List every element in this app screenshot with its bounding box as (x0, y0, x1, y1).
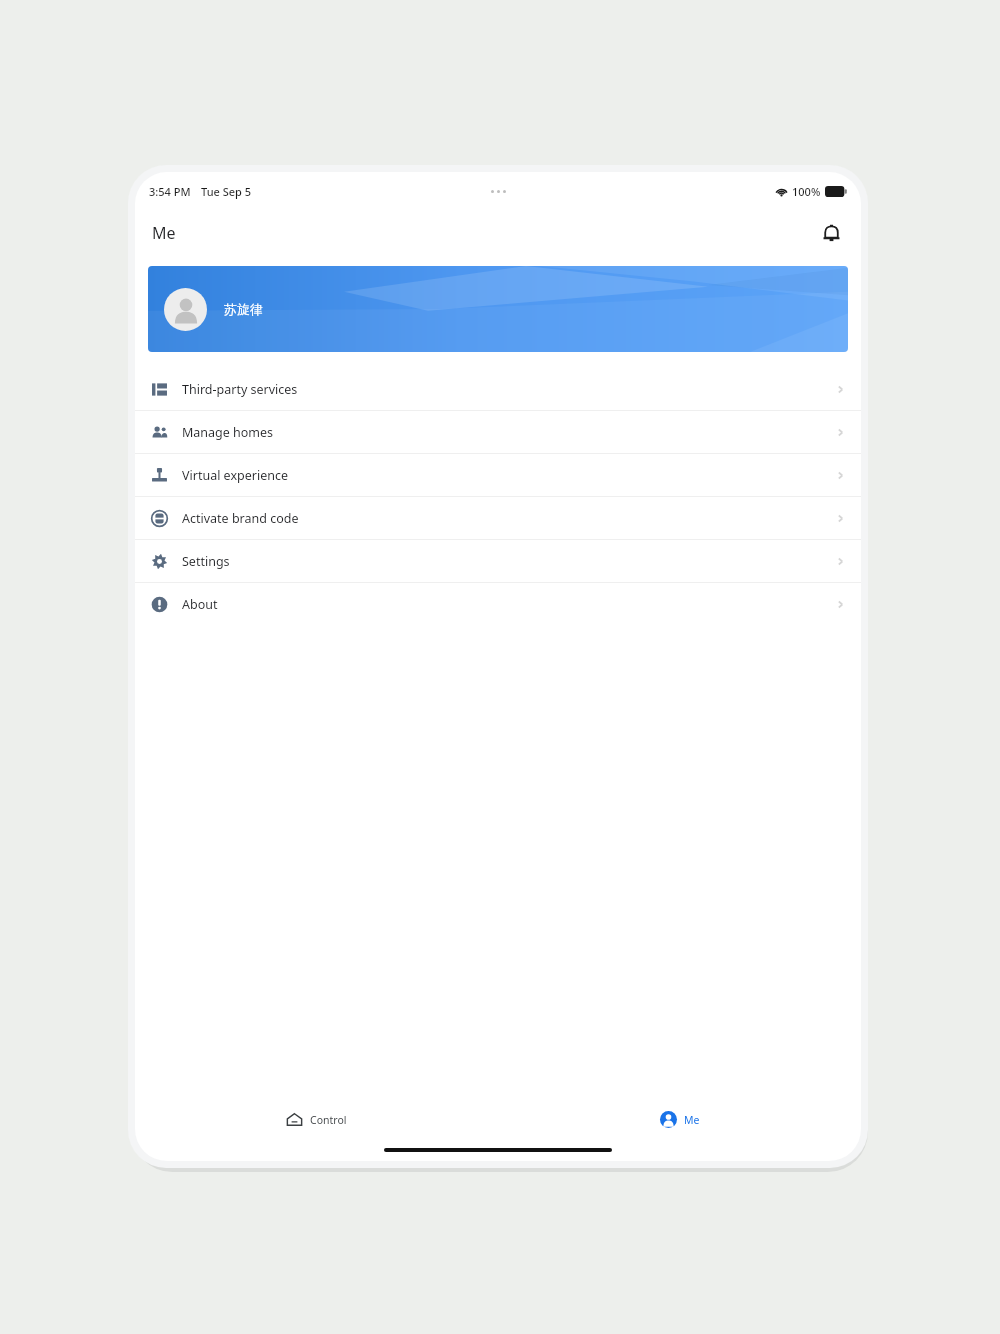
button[interactable]: Manage homes (135, 411, 861, 453)
button[interactable]: Third-party services (135, 368, 861, 410)
staticText: 苏旋律 (224, 301, 263, 317)
button[interactable]: Activate brand code (135, 497, 861, 539)
staticText: Third-party services (182, 381, 298, 398)
button[interactable]: About (135, 583, 861, 625)
staticText: Activate brand code (182, 510, 299, 527)
staticText: Settings (182, 553, 230, 570)
button[interactable]: Me (498, 1099, 861, 1139)
button[interactable]: 苏旋律 (148, 266, 848, 352)
staticText: Manage homes (182, 424, 274, 441)
button[interactable]: Virtual experience (135, 454, 861, 496)
staticText: Tue Sep 5 (201, 184, 252, 199)
button[interactable]: Notifications (811, 213, 851, 253)
staticText: Control (310, 1113, 347, 1127)
staticText: Virtual experience (182, 467, 288, 484)
staticText: Me (152, 222, 176, 244)
staticText: 3:54 PM (149, 184, 191, 199)
staticText: Me (684, 1113, 700, 1127)
button[interactable]: Control (135, 1099, 498, 1139)
button[interactable]: Settings (135, 540, 861, 582)
staticText: 100% (792, 184, 821, 199)
staticText: About (182, 596, 218, 613)
